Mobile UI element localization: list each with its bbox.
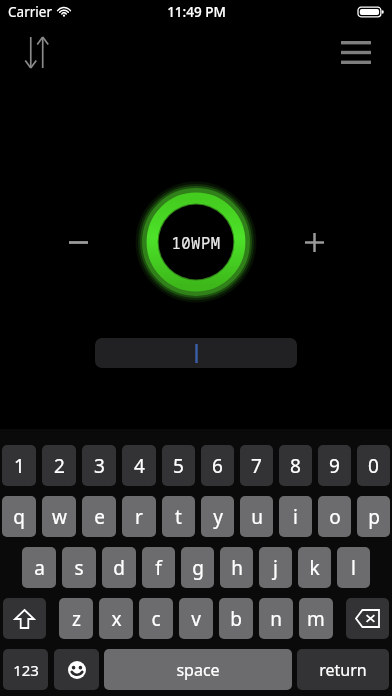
- staticText: 4: [134, 453, 145, 479]
- button[interactable]: n: [259, 598, 293, 639]
- staticText: o: [329, 504, 341, 530]
- staticText: 7: [251, 453, 262, 479]
- staticText: j: [273, 555, 278, 581]
- staticText: h: [231, 555, 243, 581]
- staticText: 6: [212, 453, 223, 479]
- button[interactable]: Increase speed: [292, 220, 336, 264]
- staticText: 1: [14, 453, 25, 479]
- button[interactable]: q: [2, 496, 36, 537]
- button[interactable]: 123: [3, 649, 48, 690]
- staticText: w: [52, 504, 67, 530]
- staticText: return: [319, 659, 367, 681]
- staticText: k: [309, 555, 320, 581]
- button[interactable]: space: [104, 649, 292, 690]
- staticText: c: [151, 606, 161, 632]
- button[interactable]: 4: [122, 445, 156, 486]
- button[interactable]: 7: [240, 445, 273, 486]
- staticText: 3: [94, 453, 105, 479]
- staticText: Carrier: [8, 3, 52, 21]
- staticText: a: [34, 555, 45, 581]
- button[interactable]: Backspace: [346, 598, 389, 639]
- button[interactable]: 3: [82, 445, 116, 486]
- staticText: s: [74, 555, 84, 581]
- staticText: r: [135, 504, 143, 530]
- staticText: 8: [290, 453, 301, 479]
- button[interactable]: Shift: [3, 598, 46, 639]
- button[interactable]: 5: [162, 445, 195, 486]
- button[interactable]: 2: [42, 445, 76, 486]
- button[interactable]: Speed 10 WPM: [140, 186, 252, 298]
- button[interactable]: p: [357, 496, 390, 537]
- button[interactable]: 1: [2, 445, 36, 486]
- staticText: p: [368, 504, 380, 530]
- button[interactable]: x: [99, 598, 133, 639]
- button[interactable]: h: [220, 547, 253, 588]
- button[interactable]: 9: [318, 445, 351, 486]
- button[interactable]: d: [102, 547, 136, 588]
- button[interactable]: Decrease speed: [56, 220, 100, 264]
- staticText: v: [191, 606, 201, 632]
- staticText: 123: [13, 660, 39, 680]
- button[interactable]: c: [139, 598, 173, 639]
- button[interactable]: 0: [357, 445, 390, 486]
- staticText: m: [307, 606, 325, 632]
- staticText: u: [251, 504, 263, 530]
- button[interactable]: Text input: [95, 338, 297, 368]
- button[interactable]: v: [179, 598, 213, 639]
- staticText: y: [213, 504, 223, 530]
- staticText: g: [192, 555, 204, 581]
- button[interactable]: m: [299, 598, 333, 639]
- button[interactable]: k: [298, 547, 331, 588]
- staticText: t: [175, 504, 182, 530]
- staticText: n: [270, 606, 282, 632]
- staticText: q: [13, 504, 25, 530]
- button[interactable]: y: [201, 496, 234, 537]
- staticText: x: [111, 606, 122, 632]
- button[interactable]: l: [337, 547, 370, 588]
- button[interactable]: 6: [201, 445, 234, 486]
- staticText: 11:49 PM: [167, 3, 226, 21]
- staticText: d: [113, 555, 125, 581]
- button[interactable]: f: [142, 547, 175, 588]
- button[interactable]: g: [181, 547, 214, 588]
- staticText: l: [351, 555, 356, 581]
- button[interactable]: b: [219, 598, 253, 639]
- button[interactable]: e: [82, 496, 116, 537]
- staticText: z: [72, 606, 81, 632]
- button[interactable]: Emoji: [54, 649, 99, 690]
- button[interactable]: return: [297, 649, 389, 690]
- staticText: 9: [329, 453, 340, 479]
- staticText: 5: [173, 453, 184, 479]
- button[interactable]: a: [22, 547, 56, 588]
- staticText: i: [293, 504, 298, 530]
- button[interactable]: z: [59, 598, 93, 639]
- staticText: 2: [54, 453, 65, 479]
- staticText: f: [155, 555, 162, 581]
- button[interactable]: o: [318, 496, 351, 537]
- staticText: 10WPM: [171, 232, 221, 253]
- button[interactable]: Menu: [334, 30, 378, 74]
- button[interactable]: Swap direction: [16, 31, 58, 73]
- staticText: b: [230, 606, 242, 632]
- button[interactable]: i: [279, 496, 312, 537]
- button[interactable]: t: [162, 496, 195, 537]
- button[interactable]: 8: [279, 445, 312, 486]
- button[interactable]: j: [259, 547, 292, 588]
- button[interactable]: r: [122, 496, 156, 537]
- staticText: 0: [368, 453, 379, 479]
- staticText: space: [176, 659, 220, 681]
- button[interactable]: u: [240, 496, 273, 537]
- button[interactable]: s: [62, 547, 96, 588]
- staticText: e: [94, 504, 105, 530]
- button[interactable]: w: [42, 496, 76, 537]
